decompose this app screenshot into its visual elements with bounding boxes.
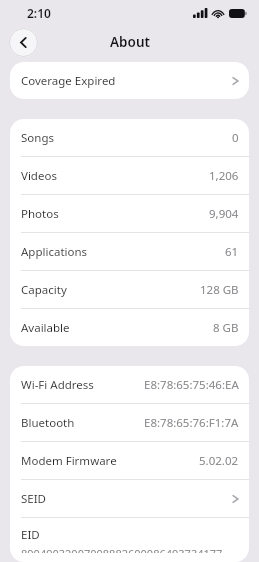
- staticText: 9,904: [209, 206, 239, 222]
- staticText: 61: [225, 244, 239, 260]
- staticText: Capacity: [21, 282, 67, 298]
- staticText: 8 GB: [213, 320, 239, 336]
- staticText: 2:10: [27, 5, 51, 21]
- staticText: 89049032007008882600086493734177: [21, 546, 223, 553]
- staticText: E8:78:65:76:F1:7A: [144, 415, 239, 431]
- button[interactable]: Photos: [10, 195, 249, 232]
- staticText: 1,206: [209, 168, 239, 184]
- button[interactable]: Applications: [10, 233, 249, 270]
- button[interactable]: Available: [10, 309, 249, 346]
- button[interactable]: Capacity: [10, 271, 249, 308]
- staticText: Videos: [21, 168, 57, 184]
- staticText: E8:78:65:75:46:EA: [144, 377, 239, 393]
- button[interactable]: SEID: [10, 480, 249, 517]
- staticText: Songs: [21, 130, 54, 146]
- button[interactable]: Coverage Expired: [10, 62, 249, 99]
- button[interactable]: EID: [10, 518, 249, 562]
- staticText: Bluetooth: [21, 415, 75, 431]
- button[interactable]: Bluetooth: [10, 404, 249, 441]
- staticText: Coverage Expired: [21, 73, 116, 89]
- staticText: Photos: [21, 206, 59, 222]
- staticText: Wi-Fi Address: [21, 377, 94, 393]
- staticText: EID: [21, 527, 40, 543]
- staticText: 5.02.02: [199, 453, 239, 469]
- staticText: Modem Firmware: [21, 453, 117, 469]
- staticText: Available: [21, 320, 70, 336]
- staticText: About: [110, 33, 150, 51]
- staticText: SEID: [21, 491, 47, 507]
- staticText: 128 GB: [200, 282, 239, 298]
- staticText: Applications: [21, 244, 88, 260]
- staticText: 0: [232, 130, 239, 146]
- button[interactable]: Songs: [10, 119, 249, 156]
- button[interactable]: Modem Firmware: [10, 442, 249, 479]
- button[interactable]: Wi-Fi Address: [10, 366, 249, 403]
- button[interactable]: Back: [9, 28, 38, 57]
- button[interactable]: Videos: [10, 157, 249, 194]
